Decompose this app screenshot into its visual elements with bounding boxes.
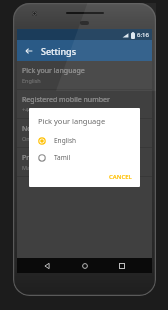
button[interactable]: Back — [22, 44, 36, 58]
button[interactable]: Pick your language — [17, 61, 152, 89]
button[interactable]: Recent apps — [115, 259, 129, 273]
staticText: Settings — [41, 45, 77, 57]
staticText: Pick your language — [38, 116, 106, 126]
button[interactable]: Privacy — [17, 148, 152, 176]
staticText: +44 7777765490 — [22, 106, 65, 113]
button[interactable]: Registered mobile number — [17, 90, 152, 118]
staticText: Privacy — [22, 153, 46, 163]
staticText: Tamil — [54, 153, 71, 162]
staticText: Registered mobile number — [22, 95, 110, 105]
button[interactable]: Tamil — [29, 149, 140, 166]
button[interactable]: English — [29, 132, 140, 149]
staticText: Manage your data — [22, 164, 70, 171]
staticText: 6:16 — [137, 31, 149, 39]
button[interactable]: CANCEL — [101, 170, 140, 184]
button[interactable]: Notifications — [17, 119, 152, 147]
staticText: English — [54, 136, 77, 145]
button[interactable]: Back — [40, 259, 54, 273]
staticText: Notifications — [22, 124, 64, 134]
button[interactable]: Home — [78, 259, 92, 273]
staticText: English — [22, 77, 41, 84]
staticText: CANCEL — [109, 173, 132, 181]
staticText: On — [22, 135, 30, 142]
staticText: Pick your language — [22, 66, 85, 76]
